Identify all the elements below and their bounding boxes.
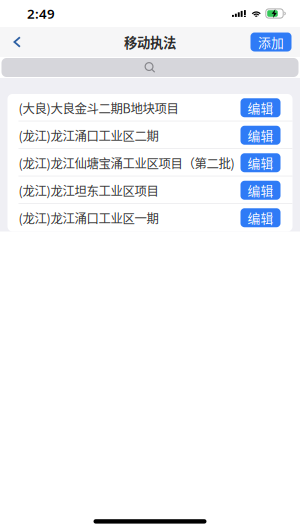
staticText: (龙江)龙江涌口工业区一期 [18,209,158,227]
staticText: (大良)大良金斗二期B地块项目 [18,99,178,117]
button[interactable]: (龙江)龙江坦东工业区项目 [7,176,292,204]
button[interactable]: (龙江)龙江涌口工业区二期 [7,121,292,149]
staticText: (龙江)龙江涌口工业区二期 [18,126,158,144]
button[interactable]: 编辑 [240,98,280,117]
button[interactable]: 编辑 [240,181,280,200]
button[interactable]: 添加 [250,32,291,51]
staticText: 添加 [258,33,284,51]
button[interactable]: (龙江)龙江涌口工业区一期 [7,204,292,231]
button[interactable]: Back [0,27,34,57]
staticText: 编辑 [247,208,273,227]
staticText: (龙江)龙江坦东工业区项目 [18,181,158,199]
staticText: (龙江)龙江仙塘宝涌工业区项目（第二批) [18,154,234,172]
button[interactable]: 编辑 [240,126,280,145]
staticText: 编辑 [247,181,273,199]
button[interactable]: Search [0,57,300,78]
staticText: 编辑 [247,98,273,117]
staticText: 2:49 [27,5,55,22]
staticText: 移动执法 [124,32,176,52]
staticText: 编辑 [247,126,273,144]
button[interactable]: (大良)大良金斗二期B地块项目 [7,94,292,121]
staticText: 编辑 [247,153,273,172]
button[interactable]: (龙江)龙江仙塘宝涌工业区项目（第二批) [7,149,292,176]
button[interactable]: 编辑 [240,153,280,172]
button[interactable]: 编辑 [240,208,280,227]
